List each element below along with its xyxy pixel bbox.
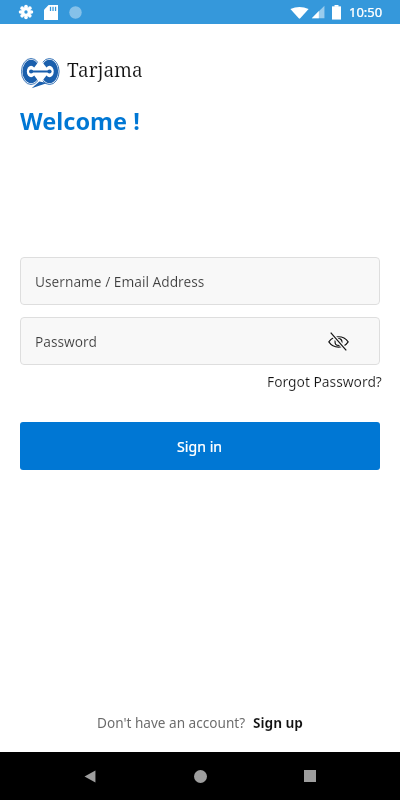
button[interactable]: Username / Email Address [20,257,380,305]
button[interactable]: Password [20,317,380,365]
button[interactable]: Back [70,756,110,796]
button[interactable]: Home [180,756,220,796]
button[interactable]: Sign in [20,422,380,470]
button[interactable]: Recents [290,756,330,796]
staticText: Username / Email Address [35,272,205,291]
staticText: 10:50 [349,3,383,21]
staticText: Tarjama [67,57,143,83]
staticText: Welcome ! [20,105,140,137]
staticText: Don't have an account? [97,713,246,732]
staticText: Sign in [177,437,223,456]
button[interactable]: Forgot Password? [267,372,382,391]
staticText: Password [35,332,97,351]
button[interactable]: Sign up [253,713,303,732]
button[interactable]: Show password [326,329,350,353]
